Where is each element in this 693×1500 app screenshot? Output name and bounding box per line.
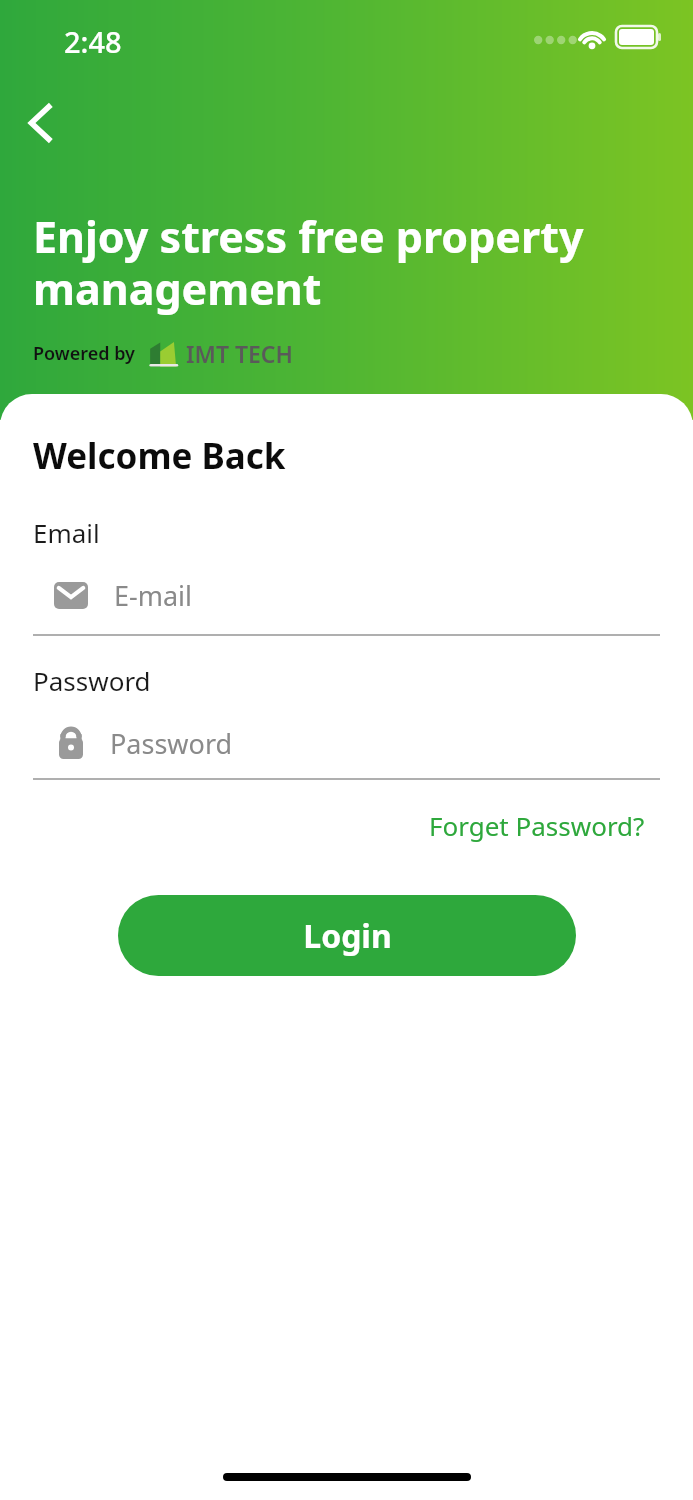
staticText: Enjoy stress free property management [33, 207, 653, 317]
staticText: Powered by [33, 341, 135, 366]
button[interactable]: Password [33, 716, 660, 770]
staticText: Welcome Back [33, 432, 286, 480]
staticText: Email [33, 515, 100, 550]
button[interactable]: E-mail [33, 568, 660, 622]
staticText: Login [303, 914, 392, 958]
staticText: Password [110, 725, 233, 762]
staticText: E-mail [114, 577, 193, 614]
button[interactable]: Login [118, 895, 576, 976]
staticText: Password [33, 663, 151, 698]
button[interactable]: Forget Password? [381, 800, 693, 851]
staticText: IMT TECH [186, 338, 293, 369]
staticText: Forget Password? [429, 808, 645, 843]
button[interactable]: Back [14, 94, 72, 152]
staticText: 2:48 [64, 22, 122, 61]
